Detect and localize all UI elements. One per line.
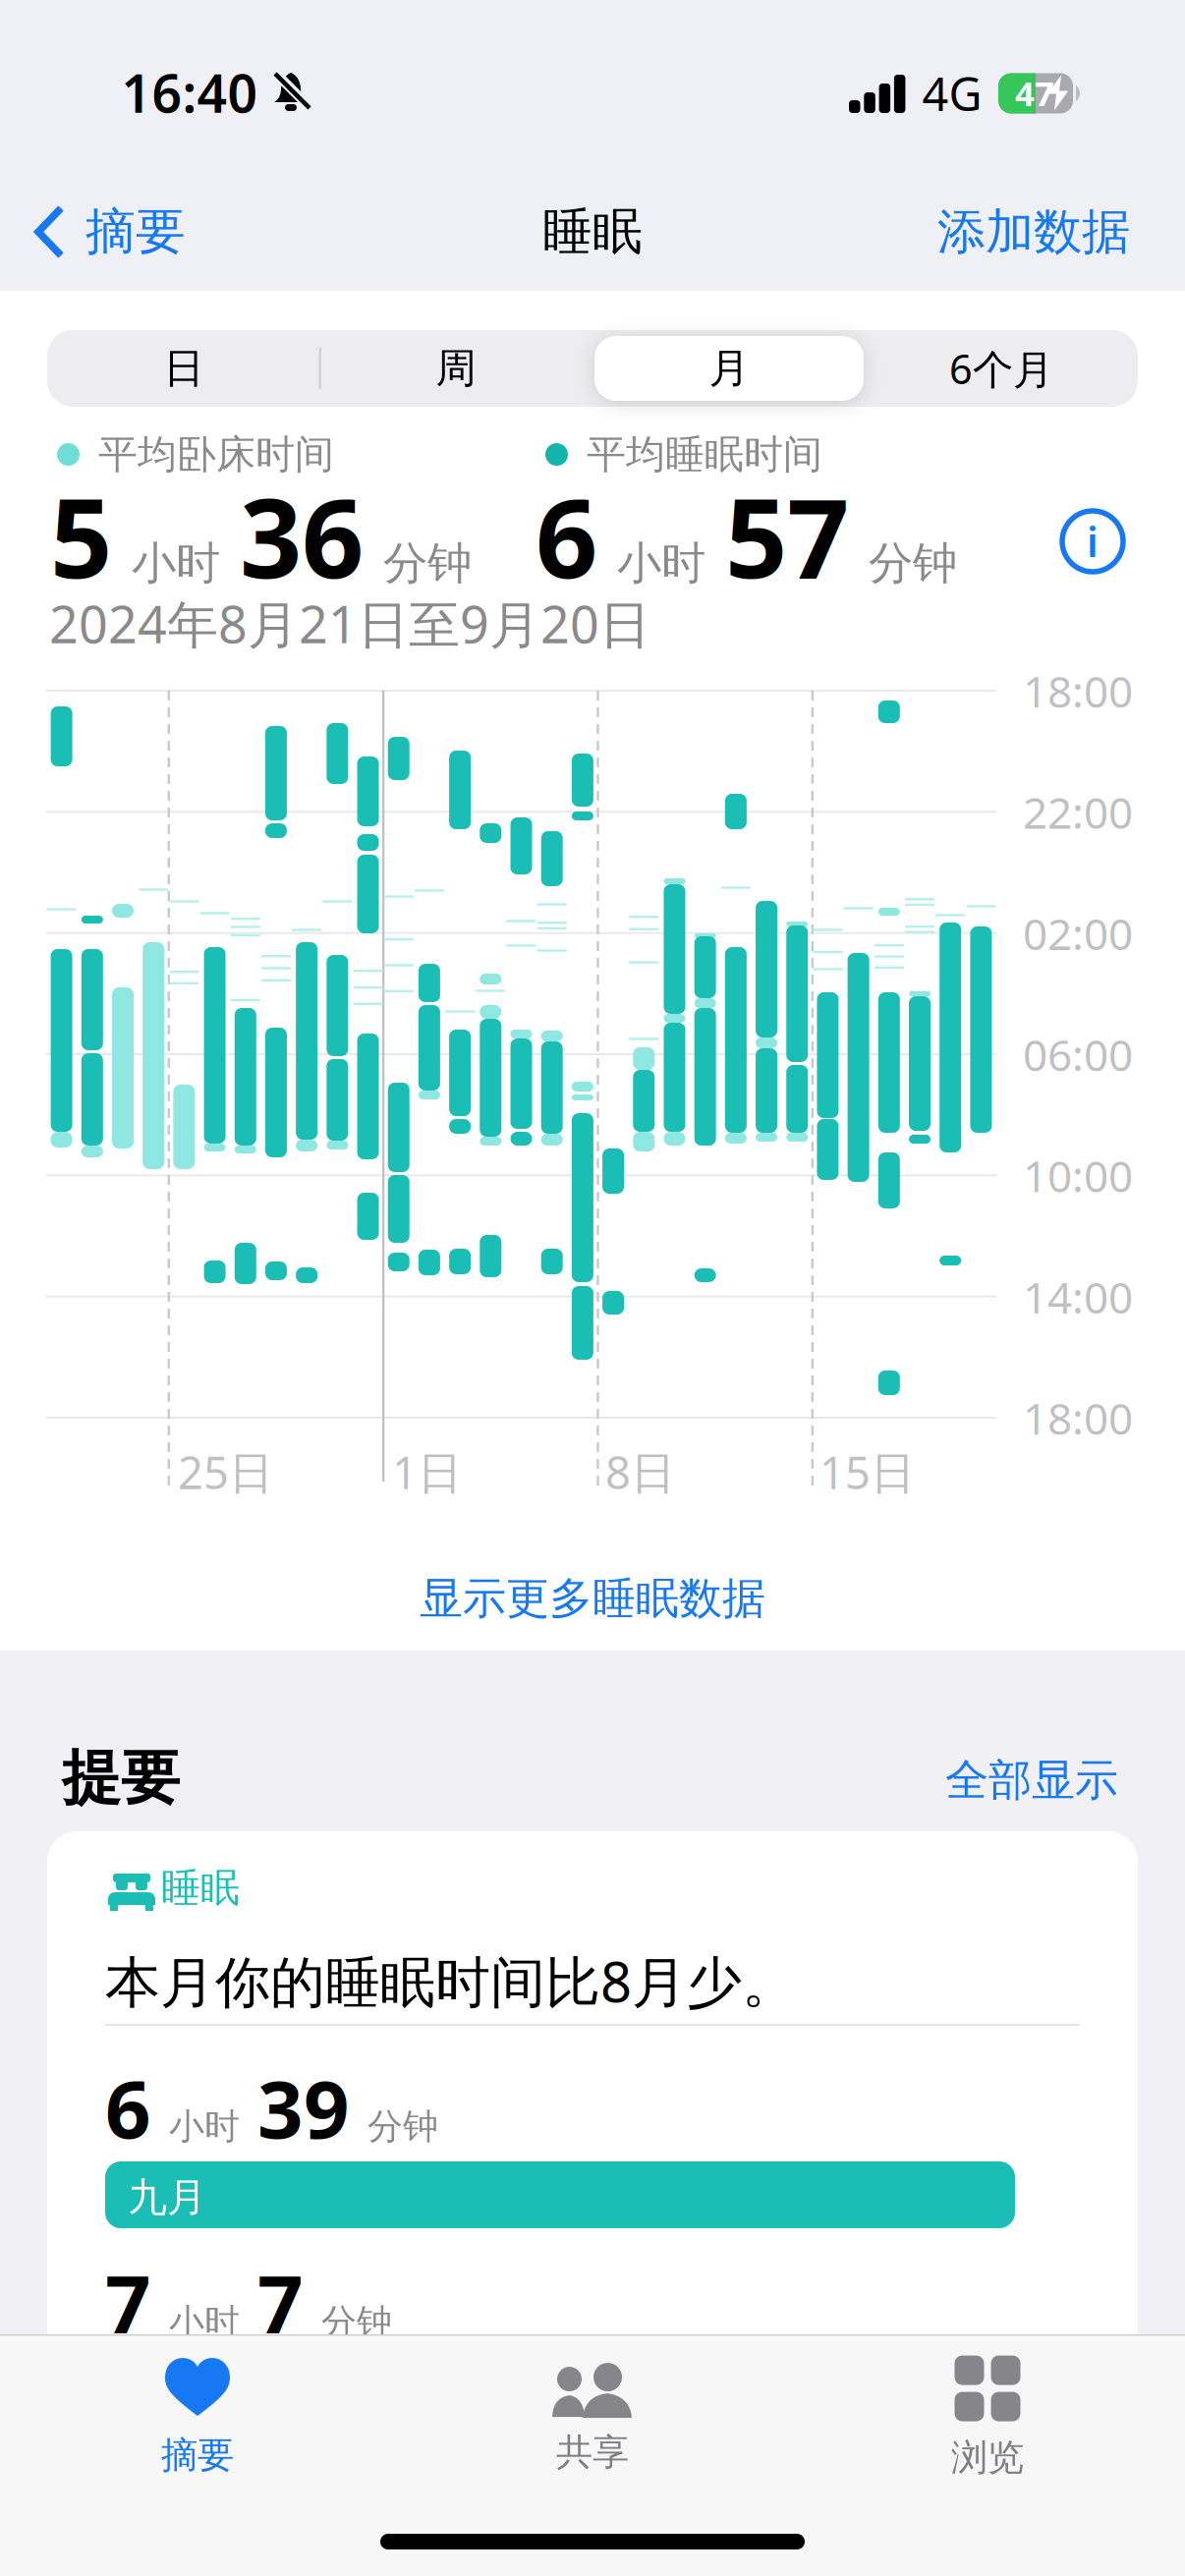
staticText: 10:00 [1023, 1147, 1133, 1204]
staticText: 睡眠 [161, 1864, 240, 1912]
staticText: 6 [105, 2054, 151, 2160]
staticText: 摘要 [161, 2433, 234, 2478]
staticText: 平均卧床时间 [98, 430, 334, 479]
button[interactable]: 添加数据 [937, 202, 1130, 262]
staticText: 5 [50, 464, 112, 608]
staticText: 小时 [132, 536, 220, 591]
staticText: 全部显示 [945, 1754, 1118, 1807]
staticText: 22:00 [1023, 783, 1133, 841]
staticText: 添加数据 [937, 202, 1130, 262]
button[interactable]: 浏览 [951, 2356, 1024, 2480]
staticText: 平均睡眠时间 [587, 430, 822, 479]
button[interactable]: 全部显示 [945, 1754, 1118, 1807]
staticText: 显示更多睡眠数据 [420, 1572, 765, 1625]
staticText: 7 [105, 2250, 151, 2356]
staticText: 57 [725, 464, 849, 608]
staticText: 14:00 [1023, 1268, 1133, 1325]
staticText: 分钟 [321, 2300, 392, 2344]
staticText: 4G [922, 63, 982, 124]
staticText: 18:00 [1023, 1389, 1133, 1447]
staticText: 共享 [556, 2430, 629, 2475]
staticText: 39 [257, 2054, 350, 2160]
staticText: 7 [257, 2250, 304, 2356]
button[interactable]: 月 [593, 330, 865, 407]
button[interactable]: 摘要 [34, 201, 186, 262]
staticText: i [1087, 514, 1099, 568]
button[interactable]: 信息 [1060, 509, 1125, 574]
button[interactable]: 周 [320, 330, 592, 407]
staticText: 浏览 [951, 2435, 1024, 2480]
staticText: 提要 [62, 1742, 180, 1814]
staticText: 小时 [617, 536, 705, 591]
staticText: 8日 [605, 1442, 675, 1501]
staticText: 02:00 [1023, 905, 1133, 962]
staticText: 小时 [169, 2300, 240, 2344]
staticText: 25日 [178, 1442, 273, 1501]
staticText: 16:40 [121, 58, 258, 127]
button[interactable]: 显示更多睡眠数据 [420, 1572, 765, 1625]
staticText: 06:00 [1023, 1026, 1133, 1083]
staticText: 九月 [128, 2173, 206, 2221]
staticText: 18:00 [1023, 662, 1133, 720]
staticText: 36 [240, 464, 364, 608]
staticText: 本月你的睡眠时间比8月少。 [105, 1944, 797, 2017]
staticText: 周 [436, 343, 476, 393]
staticText: 1日 [392, 1442, 462, 1501]
staticText: 47 [1015, 70, 1054, 115]
button[interactable]: 睡眠提要 [47, 1831, 1138, 2456]
staticText: 6个月 [949, 342, 1053, 395]
staticText: 15日 [819, 1442, 915, 1501]
staticText: 分钟 [383, 536, 472, 591]
button[interactable]: 摘要 [161, 2358, 234, 2478]
staticText: 小时 [169, 2105, 240, 2148]
staticText: 月 [709, 343, 749, 393]
staticText: 摘要 [85, 201, 186, 262]
staticText: 2024年8月21日至9月20日 [49, 589, 650, 657]
staticText: 分钟 [869, 536, 957, 591]
button[interactable]: 共享 [552, 2361, 633, 2475]
staticText: 睡眠 [542, 201, 643, 262]
button[interactable]: 日 [48, 330, 320, 407]
staticText: 6 [536, 464, 597, 608]
button[interactable]: 6个月 [865, 330, 1137, 407]
staticText: 分钟 [367, 2105, 438, 2148]
staticText: 日 [164, 343, 204, 393]
